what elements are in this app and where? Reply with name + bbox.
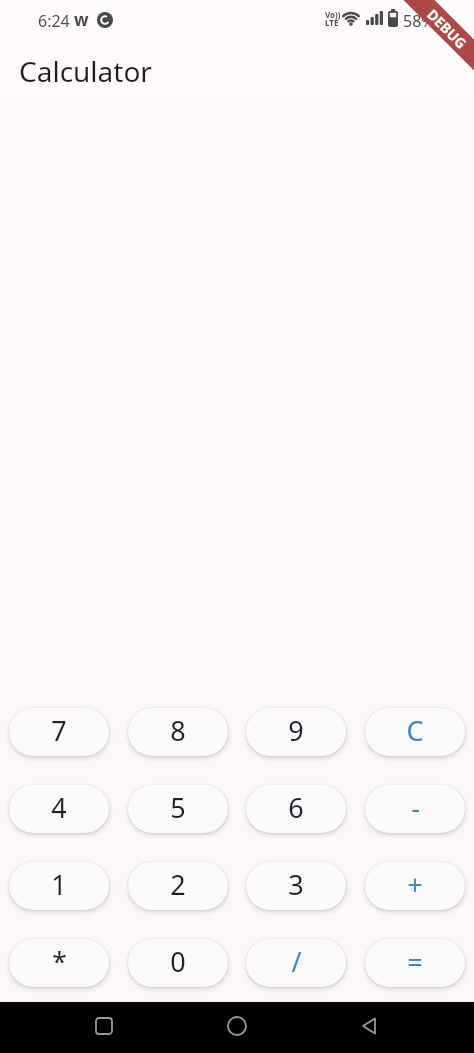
button[interactable] xyxy=(95,1017,113,1035)
button[interactable]: = xyxy=(365,939,465,987)
staticText: 0 xyxy=(170,943,186,980)
staticText: + xyxy=(407,866,423,903)
button[interactable]: 0 xyxy=(128,939,228,987)
button[interactable]: - xyxy=(365,785,465,833)
button[interactable]: 8 xyxy=(128,708,228,756)
button[interactable]: / xyxy=(246,939,346,987)
staticText: 4 xyxy=(51,789,67,826)
button[interactable]: 1 xyxy=(9,862,109,910)
button[interactable] xyxy=(361,1017,379,1035)
staticText: 3 xyxy=(288,866,304,903)
staticText: 6 xyxy=(288,789,304,826)
staticText: 1 xyxy=(51,866,67,903)
staticText: - xyxy=(411,789,420,826)
button[interactable] xyxy=(227,1016,247,1036)
staticText: 7 xyxy=(51,712,67,749)
button[interactable]: 7 xyxy=(9,708,109,756)
staticText: 2 xyxy=(170,866,186,903)
staticText: Calculator xyxy=(19,52,152,90)
button[interactable]: 6 xyxy=(246,785,346,833)
button[interactable]: 3 xyxy=(246,862,346,910)
button[interactable]: 9 xyxy=(246,708,346,756)
staticText: 6:24 xyxy=(38,10,70,32)
staticText: 8 xyxy=(170,712,186,749)
staticText: C xyxy=(406,712,424,749)
staticText: Vo)) xyxy=(325,9,341,20)
staticText: LTE xyxy=(325,17,339,28)
button[interactable]: + xyxy=(365,862,465,910)
button[interactable]: * xyxy=(9,939,109,987)
staticText: * xyxy=(52,943,67,980)
staticText: = xyxy=(407,943,423,980)
button[interactable]: 5 xyxy=(128,785,228,833)
staticText: w xyxy=(74,8,89,31)
button[interactable]: 2 xyxy=(128,862,228,910)
staticText: 5 xyxy=(170,789,186,826)
staticText: 58% xyxy=(403,10,435,32)
staticText: / xyxy=(291,943,302,980)
button[interactable]: C xyxy=(365,708,465,756)
button[interactable]: 4 xyxy=(9,785,109,833)
staticText: 9 xyxy=(288,712,304,749)
staticText: DEBUG xyxy=(423,5,471,53)
